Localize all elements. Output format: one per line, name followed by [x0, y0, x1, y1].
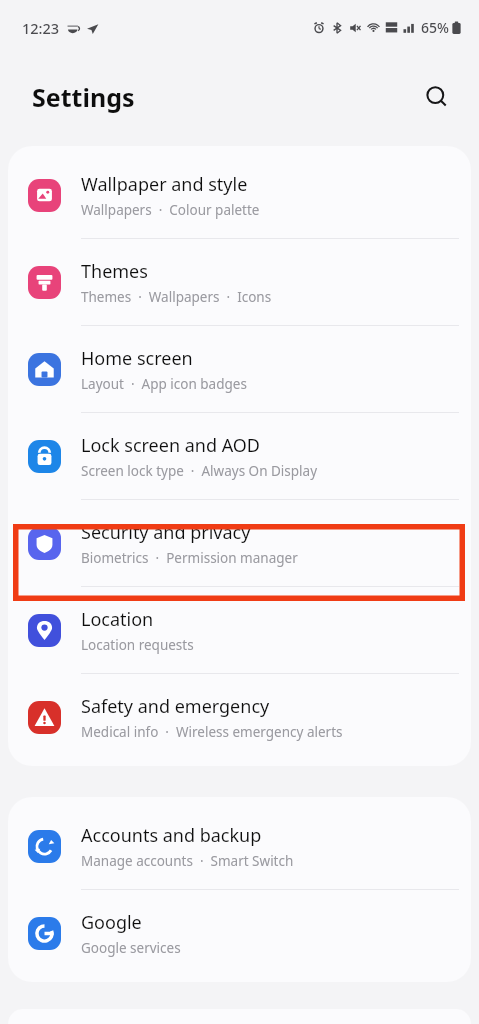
staticText: Home screen — [81, 346, 193, 371]
button[interactable]: Safety and emergency — [8, 674, 471, 760]
staticText: Manage accounts · Smart Switch — [81, 852, 294, 870]
staticText: Wallpapers · Colour palette — [81, 201, 260, 219]
staticText: Layout · App icon badges — [81, 375, 247, 393]
staticText: Location — [81, 607, 154, 632]
button[interactable]: Search — [417, 77, 457, 117]
button[interactable]: Themes — [8, 239, 471, 325]
staticText: Location requests — [81, 636, 194, 654]
staticText: Security and privacy — [81, 520, 251, 545]
staticText: Lock screen and AOD — [81, 433, 261, 458]
staticText: Themes — [81, 259, 148, 284]
staticText: Themes · Wallpapers · Icons — [81, 288, 272, 306]
staticText: Accounts and backup — [81, 823, 262, 848]
staticText: Biometrics · Permission manager — [81, 549, 298, 567]
staticText: Safety and emergency — [81, 694, 270, 719]
staticText: 12:23 — [22, 18, 60, 38]
staticText: Screen lock type · Always On Display — [81, 462, 318, 480]
button[interactable]: Wallpaper and style — [8, 152, 471, 238]
staticText: Settings — [32, 80, 135, 114]
staticText: Medical info · Wireless emergency alerts — [81, 723, 343, 741]
button[interactable]: Accounts and backup — [8, 803, 471, 889]
staticText: Google — [81, 910, 142, 935]
button[interactable]: Location — [8, 587, 471, 673]
button[interactable]: Home screen — [8, 326, 471, 412]
button[interactable]: Google — [8, 890, 471, 976]
button[interactable]: Security and privacy — [8, 500, 471, 586]
button[interactable]: Lock screen and AOD — [8, 413, 471, 499]
staticText: Wallpaper and style — [81, 172, 248, 197]
staticText: 65% — [421, 18, 449, 37]
staticText: Google services — [81, 939, 181, 957]
